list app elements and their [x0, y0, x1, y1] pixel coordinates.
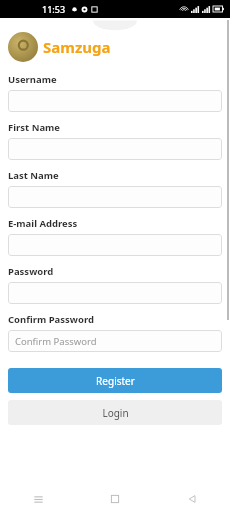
button[interactable]: [8, 138, 222, 160]
button[interactable]: Login: [8, 400, 222, 425]
staticText: Register: [96, 374, 135, 388]
button[interactable]: Recent apps: [0, 486, 76, 512]
staticText: First Name: [8, 121, 61, 134]
button[interactable]: [8, 186, 222, 208]
button[interactable]: Home: [76, 486, 153, 512]
staticText: Username: [8, 73, 57, 86]
button[interactable]: [8, 234, 222, 256]
button[interactable]: Confirm Password: [8, 330, 222, 352]
button[interactable]: Register: [8, 368, 222, 393]
staticText: Last Name: [8, 169, 59, 182]
button[interactable]: Back: [153, 486, 230, 512]
button[interactable]: [8, 90, 222, 112]
staticText: 11:53: [42, 3, 66, 15]
staticText: Password: [8, 265, 54, 278]
staticText: Login: [102, 406, 129, 420]
staticText: Samzuga: [43, 37, 111, 57]
staticText: E-mail Address: [8, 217, 78, 230]
staticText: Confirm Password: [8, 313, 94, 326]
staticText: Confirm Password: [15, 335, 97, 348]
button[interactable]: [8, 282, 222, 304]
